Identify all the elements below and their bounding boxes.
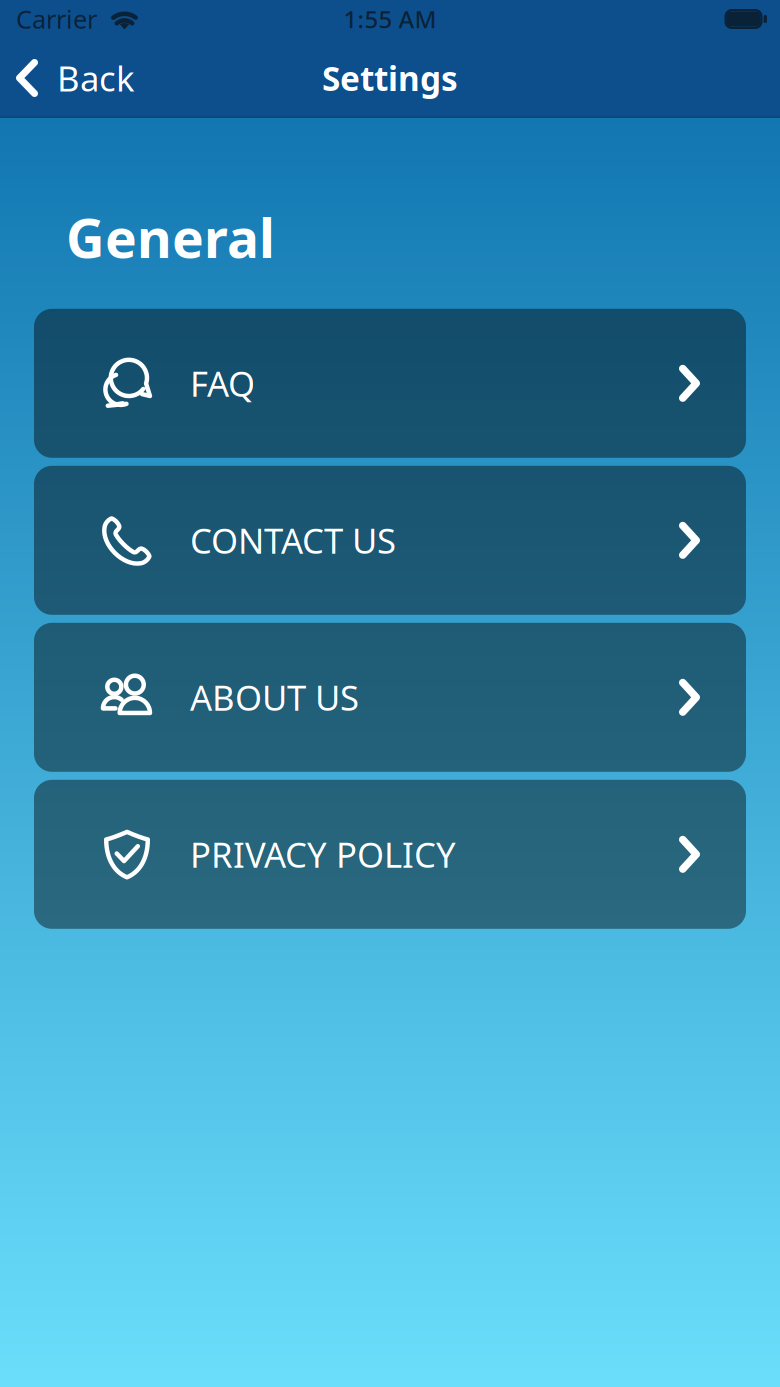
staticText: Back — [57, 55, 135, 101]
button[interactable]: CONTACT US — [34, 466, 746, 615]
staticText: 1:55 AM — [343, 3, 436, 35]
staticText: General — [66, 202, 275, 273]
button[interactable]: FAQ — [34, 309, 746, 458]
staticText: CONTACT US — [190, 517, 396, 563]
button[interactable]: PRIVACY POLICY — [34, 780, 746, 929]
staticText: Carrier — [16, 2, 97, 36]
button[interactable]: ABOUT US — [34, 623, 746, 772]
button[interactable]: Back — [0, 44, 135, 112]
staticText: ABOUT US — [190, 674, 359, 720]
staticText: Settings — [322, 56, 458, 100]
staticText: FAQ — [190, 360, 255, 406]
staticText: PRIVACY POLICY — [190, 831, 456, 877]
